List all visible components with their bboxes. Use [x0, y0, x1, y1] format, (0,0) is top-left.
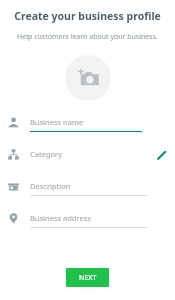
staticText: Business address [30, 213, 91, 223]
staticText: Business name [30, 117, 84, 127]
staticText: Create your business profile [0, 9, 175, 23]
other: Category [8, 149, 19, 160]
other: Description [8, 181, 19, 192]
button[interactable]: Business name [0, 113, 175, 145]
staticText: Description [30, 181, 71, 191]
other: Business name [8, 117, 19, 128]
staticText: Category [30, 149, 62, 159]
button[interactable]: Description [0, 177, 175, 209]
button[interactable]: NEXT [66, 268, 109, 287]
other: Business address [8, 213, 19, 224]
button[interactable]: Edit category [155, 148, 168, 161]
button[interactable]: Add business photo [65, 55, 111, 101]
button[interactable]: Category [0, 145, 175, 177]
button[interactable]: Business address [0, 209, 175, 241]
staticText: Help customers learn about your business… [0, 32, 175, 42]
staticText: NEXT [79, 273, 97, 283]
